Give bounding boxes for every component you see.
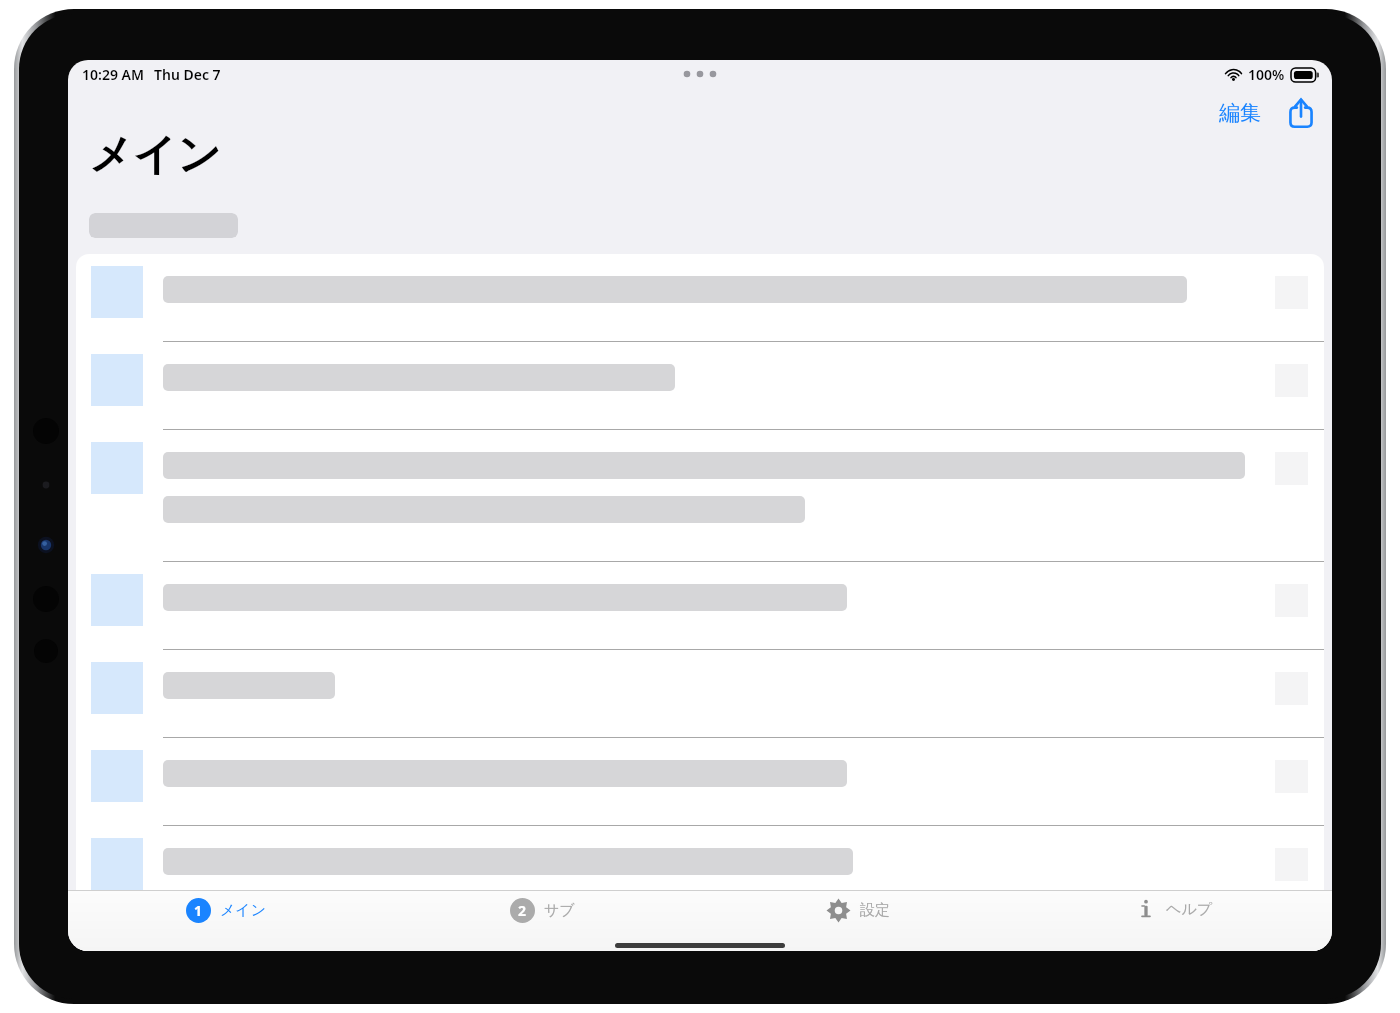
staticText: Thu Dec 7 bbox=[154, 65, 221, 84]
button[interactable] bbox=[76, 650, 1324, 738]
staticText: メイン bbox=[220, 901, 267, 920]
button[interactable] bbox=[76, 254, 1324, 342]
staticText: 100% bbox=[1248, 65, 1285, 84]
button[interactable] bbox=[76, 738, 1324, 826]
button[interactable] bbox=[76, 342, 1324, 430]
staticText: 2 bbox=[518, 901, 527, 920]
staticText: 10:29 AM bbox=[82, 65, 144, 84]
staticText: サブ bbox=[544, 901, 575, 920]
button[interactable]: 編集 bbox=[1212, 93, 1268, 133]
staticText: 1 bbox=[194, 901, 203, 920]
button[interactable] bbox=[76, 562, 1324, 650]
staticText: 編集 bbox=[1219, 100, 1261, 126]
button[interactable] bbox=[76, 826, 1324, 914]
staticText: メイン bbox=[89, 128, 222, 182]
button[interactable]: 1 bbox=[68, 891, 384, 939]
button[interactable]: 2 bbox=[384, 891, 700, 939]
button[interactable] bbox=[76, 430, 1324, 562]
staticText: ヘルプ bbox=[1166, 900, 1213, 919]
button[interactable]: ヘルプ bbox=[1016, 891, 1332, 939]
button[interactable]: 設定 bbox=[700, 891, 1016, 939]
button[interactable]: Share bbox=[1282, 92, 1320, 133]
staticText: 設定 bbox=[860, 901, 890, 920]
